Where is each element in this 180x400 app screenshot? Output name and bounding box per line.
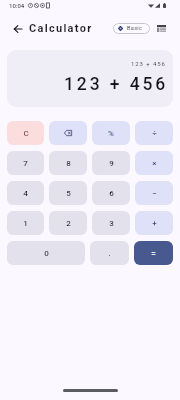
button[interactable]: + xyxy=(135,211,173,235)
staticText: 123 + 456 xyxy=(64,74,169,95)
button[interactable]: − xyxy=(135,181,173,205)
staticText: = xyxy=(151,249,156,258)
other: Backspace xyxy=(64,130,72,136)
button[interactable]: Basic xyxy=(113,23,150,34)
staticText: ÷ xyxy=(152,129,157,138)
button[interactable]: 1 xyxy=(7,211,44,235)
button[interactable]: % xyxy=(92,121,130,145)
staticText: 9 xyxy=(109,159,114,168)
button[interactable]: 3 xyxy=(92,211,130,235)
button[interactable]: C xyxy=(7,121,44,145)
staticText: C xyxy=(23,129,29,138)
button[interactable]: ÷ xyxy=(135,121,173,145)
button[interactable]: History xyxy=(154,21,169,36)
button[interactable]: 5 xyxy=(49,181,87,205)
staticText: % xyxy=(108,129,114,138)
staticText: . xyxy=(108,249,111,258)
button[interactable]: 4 xyxy=(7,181,44,205)
staticText: 5 xyxy=(66,189,71,198)
button[interactable]: 123 + 456 xyxy=(7,50,173,107)
staticText: Basic xyxy=(127,25,143,32)
staticText: 123 + 456 xyxy=(131,60,166,67)
button[interactable]: 7 xyxy=(7,151,44,175)
staticText: 2 xyxy=(66,219,71,228)
staticText: + xyxy=(152,219,157,228)
staticText: Calculator xyxy=(29,22,93,35)
staticText: 4 xyxy=(23,189,28,198)
button[interactable]: 8 xyxy=(49,151,87,175)
button[interactable]: . xyxy=(90,241,129,265)
staticText: 7 xyxy=(23,159,28,168)
staticText: − xyxy=(152,189,157,198)
button[interactable]: Backspace xyxy=(49,121,87,145)
staticText: 0 xyxy=(44,249,49,258)
button[interactable]: 9 xyxy=(92,151,130,175)
button[interactable]: × xyxy=(135,151,173,175)
staticText: × xyxy=(152,159,157,168)
button[interactable]: 6 xyxy=(92,181,130,205)
button[interactable]: = xyxy=(134,241,173,265)
staticText: 1 xyxy=(23,219,28,228)
staticText: 3 xyxy=(109,219,114,228)
staticText: 6 xyxy=(109,189,114,198)
button[interactable]: 0 xyxy=(7,241,85,265)
button[interactable]: 2 xyxy=(49,211,87,235)
staticText: 10:04 xyxy=(9,2,25,9)
button[interactable]: Back xyxy=(8,19,27,38)
staticText: 8 xyxy=(66,159,71,168)
